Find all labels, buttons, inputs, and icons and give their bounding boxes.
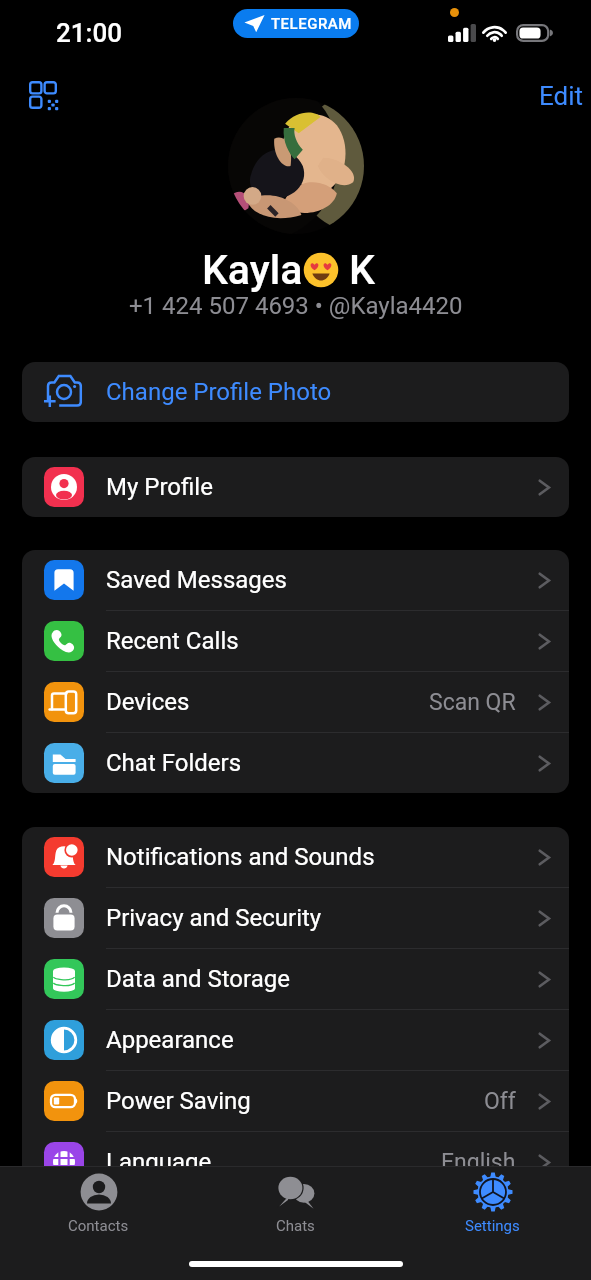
- button[interactable]: Language: [22, 1132, 569, 1192]
- staticText: K: [349, 246, 375, 294]
- staticText: Contacts: [68, 1217, 129, 1235]
- staticText: Settings: [465, 1217, 520, 1235]
- button[interactable]: Chats: [197, 1167, 394, 1235]
- staticText: +1 424 507 4693 • @Kayla4420: [129, 292, 463, 320]
- button[interactable]: Devices: [22, 672, 569, 732]
- staticText: Saved Messages: [106, 566, 287, 594]
- staticText: Kayla: [202, 246, 303, 294]
- staticText: Off: [484, 1088, 516, 1115]
- button[interactable]: Data and Storage: [22, 949, 569, 1009]
- button[interactable]: Notifications and Sounds: [22, 827, 569, 887]
- staticText: Change Profile Photo: [106, 378, 332, 406]
- staticText: Power Saving: [106, 1087, 251, 1115]
- button[interactable]: Scan QR code: [17, 69, 69, 121]
- staticText: Notifications and Sounds: [106, 843, 375, 871]
- staticText: Language: [106, 1148, 212, 1176]
- button[interactable]: Appearance: [22, 1010, 569, 1070]
- staticText: Chats: [276, 1217, 315, 1235]
- button[interactable]: Saved Messages: [22, 550, 569, 610]
- staticText: My Profile: [106, 473, 213, 501]
- button[interactable]: Privacy and Security: [22, 888, 569, 948]
- staticText: Scan QR: [429, 689, 516, 716]
- staticText: Recent Calls: [106, 627, 239, 655]
- button[interactable]: Change Profile Photo: [22, 362, 569, 422]
- staticText: Appearance: [106, 1026, 234, 1054]
- staticText: Privacy and Security: [106, 904, 322, 932]
- staticText: Edit: [539, 81, 584, 111]
- button[interactable]: Power Saving: [22, 1071, 569, 1131]
- button[interactable]: My Profile: [22, 457, 569, 517]
- button[interactable]: Contacts: [0, 1167, 197, 1235]
- button[interactable]: Settings: [394, 1167, 591, 1235]
- button[interactable]: Edit: [531, 75, 591, 117]
- staticText: English: [441, 1149, 516, 1176]
- staticText: Chat Folders: [106, 749, 242, 777]
- staticText: Devices: [106, 688, 190, 716]
- staticText: TELEGRAM: [271, 15, 352, 33]
- staticText: Data and Storage: [106, 965, 290, 993]
- staticText: 21:00: [56, 18, 123, 48]
- button[interactable]: Recent Calls: [22, 611, 569, 671]
- button[interactable]: Chat Folders: [22, 733, 569, 793]
